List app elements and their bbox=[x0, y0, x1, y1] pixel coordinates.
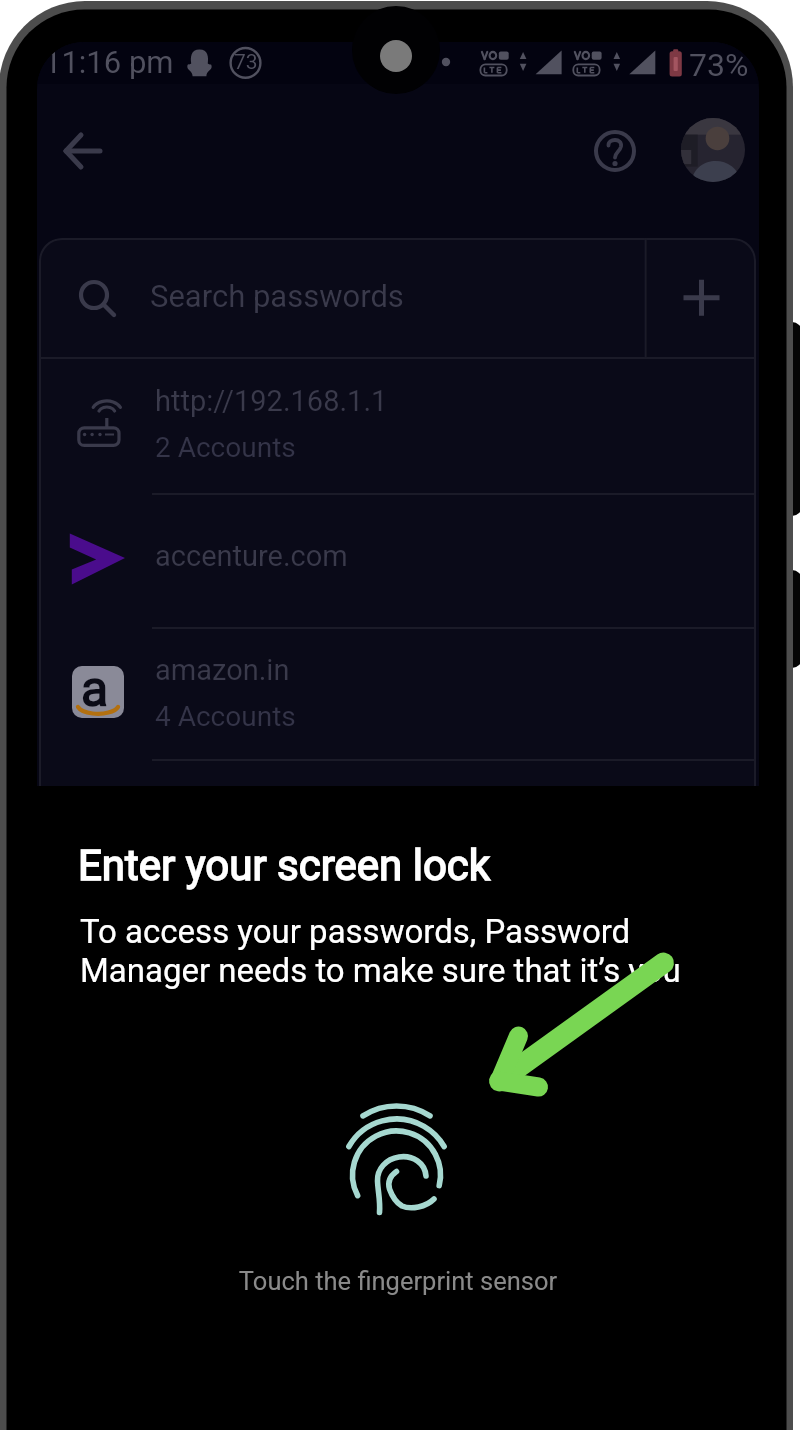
staticText: accenture.com bbox=[155, 539, 348, 573]
staticText: 4 Accounts bbox=[155, 700, 296, 733]
staticText: Touch the fingerprint sensor bbox=[37, 1266, 759, 1296]
button[interactable]: Account bbox=[681, 118, 745, 182]
staticText: Enter your screen lock bbox=[78, 841, 491, 890]
button[interactable]: Back bbox=[45, 115, 117, 187]
button[interactable]: accenture.com bbox=[39, 493, 756, 627]
staticText: Search passwords bbox=[150, 278, 404, 314]
button[interactable]: Search passwords bbox=[39, 238, 646, 358]
staticText: amazon.in bbox=[155, 653, 290, 687]
button[interactable]: Add password bbox=[646, 238, 756, 358]
staticText: 2 Accounts bbox=[155, 431, 296, 464]
staticText: http://192.168.1.1 bbox=[155, 384, 388, 418]
staticText: 11:16 pm bbox=[44, 44, 174, 80]
button[interactable]: http://192.168.1.1 bbox=[39, 358, 756, 492]
staticText: 73 bbox=[234, 50, 258, 75]
staticText: 73% bbox=[689, 46, 749, 84]
staticText: To access your passwords, Password Manag… bbox=[80, 912, 681, 990]
staticText: a bbox=[81, 660, 109, 712]
button[interactable]: Help bbox=[579, 115, 651, 187]
button[interactable]: a bbox=[39, 627, 756, 760]
